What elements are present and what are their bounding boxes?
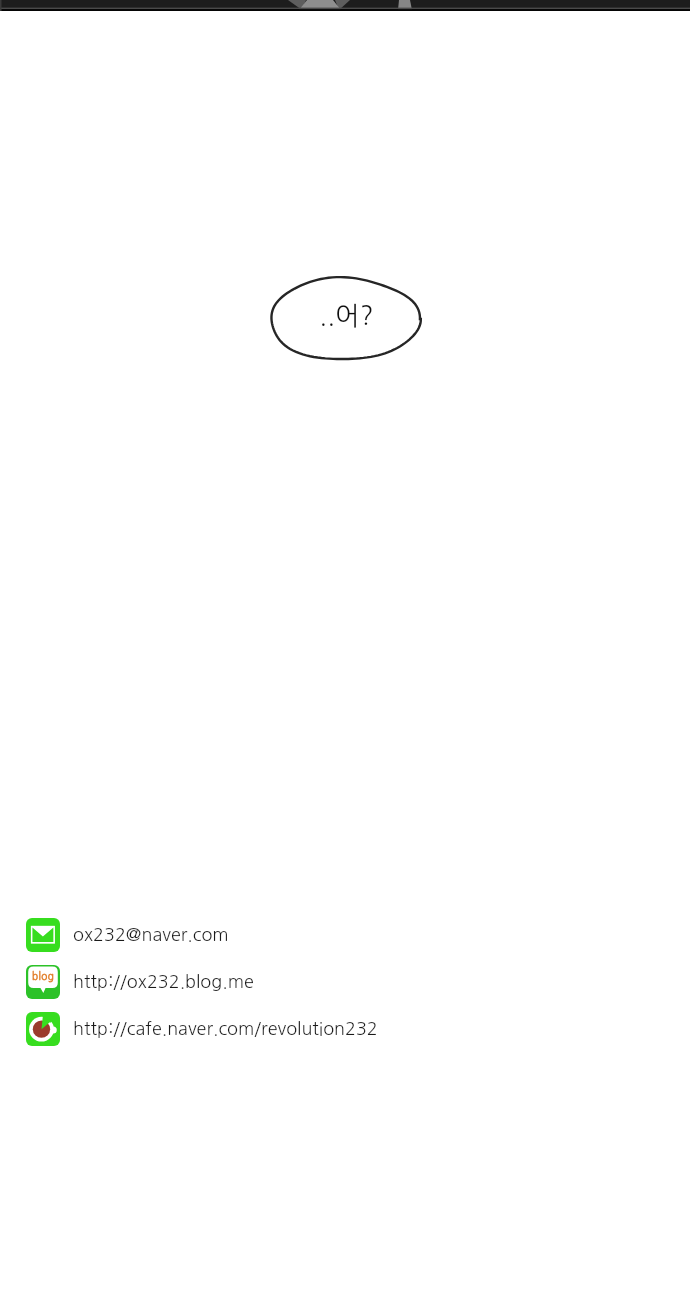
other: Email [26,918,60,952]
button[interactable]: Email [0,918,690,952]
staticText: http://cafe.naver.com/revolution232 [73,1020,378,1038]
other: Cafe [26,1012,60,1046]
staticText: http://ox232.blog.me [73,973,254,991]
staticText: ox232@naver.com [73,926,229,944]
other: Blog [26,965,60,999]
staticText: blog [32,971,55,981]
button[interactable]: Cafe [0,1012,690,1046]
button[interactable]: Blog [0,965,690,999]
staticText: ..어? [319,303,374,329]
